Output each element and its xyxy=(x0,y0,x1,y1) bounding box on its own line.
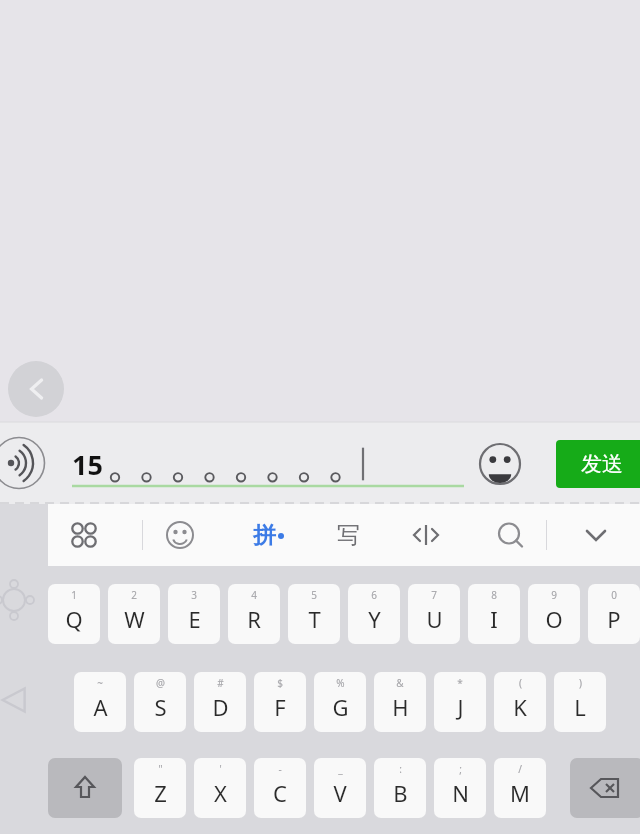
button[interactable]: Shift xyxy=(48,758,122,818)
staticText: K xyxy=(513,692,527,722)
staticText: 0 xyxy=(611,588,617,602)
button[interactable]: Keyboard tool xyxy=(60,504,108,566)
staticText: D xyxy=(212,692,229,722)
staticText: : xyxy=(399,762,402,776)
staticText: & xyxy=(396,676,404,690)
button[interactable]: $ xyxy=(254,672,306,732)
staticText: 发送 xyxy=(581,451,623,477)
button[interactable]: Backspace xyxy=(570,758,640,818)
button[interactable]: _ xyxy=(314,758,366,818)
button[interactable]: 3 xyxy=(168,584,220,644)
staticText: C xyxy=(273,778,287,808)
button[interactable]: Keyboard tool xyxy=(402,504,450,566)
staticText: R xyxy=(247,604,261,634)
staticText: G xyxy=(332,692,349,722)
staticText: 8 xyxy=(491,588,497,602)
staticText: @ xyxy=(156,676,165,690)
button[interactable]: @ xyxy=(134,672,186,732)
staticText: A xyxy=(93,692,108,722)
staticText: Y xyxy=(368,604,381,634)
button[interactable]: " xyxy=(134,758,186,818)
staticText: ' xyxy=(219,762,222,776)
button[interactable]: ' xyxy=(194,758,246,818)
button[interactable]: 9 xyxy=(528,584,580,644)
staticText: T xyxy=(308,604,321,634)
staticText: H xyxy=(392,692,409,722)
button[interactable]: - xyxy=(254,758,306,818)
staticText: _ xyxy=(338,762,343,776)
button[interactable]: ) xyxy=(554,672,606,732)
staticText: B xyxy=(393,778,408,808)
staticText: Z xyxy=(154,778,167,808)
staticText: % xyxy=(336,676,345,690)
staticText: - xyxy=(278,762,282,776)
button[interactable]: 发送 xyxy=(556,440,640,488)
button[interactable]: 0 xyxy=(588,584,640,644)
staticText: 2 xyxy=(131,588,137,602)
staticText: X xyxy=(214,778,227,808)
staticText: " xyxy=(158,762,163,776)
staticText: 15 xyxy=(72,446,103,483)
staticText: 1 xyxy=(71,588,77,602)
staticText: W xyxy=(124,604,145,634)
staticText: P xyxy=(607,604,621,634)
staticText: # xyxy=(217,676,224,690)
staticText: 3 xyxy=(191,588,197,602)
staticText: 拼 xyxy=(253,521,276,550)
staticText: $ xyxy=(277,676,283,690)
button[interactable]: / xyxy=(494,758,546,818)
staticText: Q xyxy=(65,604,83,634)
staticText: ( xyxy=(519,676,522,690)
staticText: 7 xyxy=(431,588,437,602)
staticText: ~ xyxy=(97,676,103,690)
staticText: * xyxy=(457,676,463,690)
staticText: F xyxy=(274,692,286,722)
staticText: ; xyxy=(459,762,462,776)
button[interactable]: 写 xyxy=(318,504,378,566)
button[interactable]: 8 xyxy=(468,584,520,644)
button[interactable]: Keyboard tool xyxy=(156,504,204,566)
button[interactable]: % xyxy=(314,672,366,732)
button[interactable]: : xyxy=(374,758,426,818)
button[interactable]: Emoji xyxy=(478,442,522,486)
button[interactable]: 1 xyxy=(48,584,100,644)
button[interactable]: & xyxy=(374,672,426,732)
staticText: V xyxy=(333,778,347,808)
staticText: U xyxy=(426,604,443,634)
staticText: S xyxy=(154,692,167,722)
button[interactable]: 2 xyxy=(108,584,160,644)
staticText: ) xyxy=(579,676,582,690)
button[interactable]: * xyxy=(434,672,486,732)
staticText: E xyxy=(188,604,201,634)
staticText: 6 xyxy=(371,588,377,602)
button[interactable]: 7 xyxy=(408,584,460,644)
button[interactable]: # xyxy=(194,672,246,732)
button[interactable]: 6 xyxy=(348,584,400,644)
button[interactable]: Keyboard tool xyxy=(486,504,534,566)
staticText: / xyxy=(518,762,522,776)
staticText: J xyxy=(457,692,464,722)
button[interactable]: Voice input xyxy=(0,436,46,490)
button[interactable]: Keyboard tool xyxy=(572,504,620,566)
staticText: I xyxy=(490,604,498,634)
button[interactable]: ( xyxy=(494,672,546,732)
button[interactable]: 4 xyxy=(228,584,280,644)
staticText: O xyxy=(545,604,563,634)
button[interactable]: 拼 xyxy=(236,504,300,566)
staticText: M xyxy=(510,778,530,808)
staticText: 4 xyxy=(251,588,257,602)
staticText: N xyxy=(452,778,469,808)
button[interactable]: ; xyxy=(434,758,486,818)
button[interactable]: Back xyxy=(8,361,64,417)
button[interactable]: ~ xyxy=(74,672,126,732)
staticText: 5 xyxy=(311,588,317,602)
button[interactable]: 5 xyxy=(288,584,340,644)
staticText: L xyxy=(574,692,586,722)
button[interactable]: 15 xyxy=(72,440,464,488)
staticText: 9 xyxy=(551,588,557,602)
staticText: 写 xyxy=(337,521,360,550)
